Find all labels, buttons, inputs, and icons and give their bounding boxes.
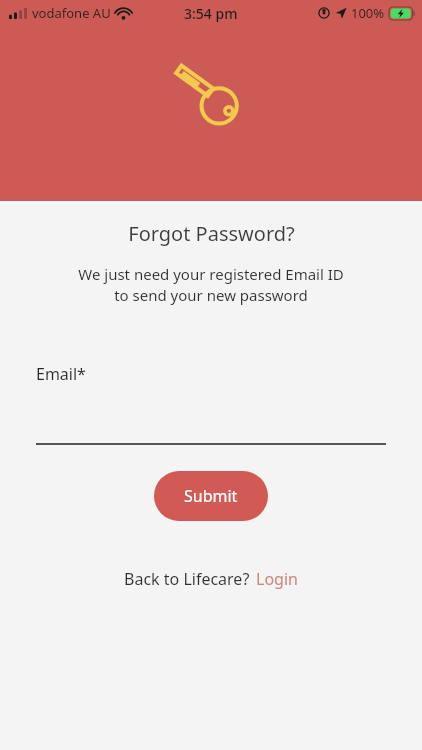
staticText: Submit (184, 485, 238, 507)
staticText: vodafone AU (32, 4, 111, 22)
other: Key (163, 46, 259, 128)
staticText: Login (256, 568, 298, 590)
staticText: 100% (351, 4, 385, 22)
button[interactable] (36, 423, 386, 445)
staticText: We just need your registered Email ID to… (78, 264, 344, 306)
button[interactable]: Login (256, 568, 298, 590)
staticText: Back to Lifecare? (124, 568, 250, 590)
staticText: Forgot Password? (128, 220, 295, 247)
button[interactable]: Submit (154, 471, 268, 521)
staticText: 3:54 pm (184, 4, 238, 23)
staticText: Email* (36, 363, 86, 385)
